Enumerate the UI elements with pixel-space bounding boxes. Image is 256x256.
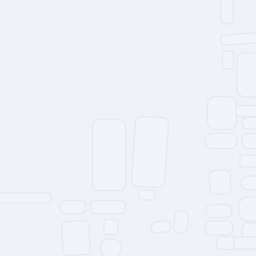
button[interactable]: Chip — [151, 221, 171, 232]
button[interactable]: Row — [242, 117, 256, 129]
button[interactable]: Field — [91, 200, 125, 213]
button[interactable]: Card — [62, 221, 89, 255]
button[interactable]: Badge — [101, 239, 121, 256]
button[interactable]: Pill — [242, 223, 256, 239]
button[interactable]: Row — [234, 237, 256, 249]
button[interactable]: Title bar — [0, 193, 51, 203]
button[interactable]: Pill — [206, 204, 232, 217]
button[interactable]: Pill — [216, 236, 237, 249]
button[interactable]: Tag — [60, 200, 86, 213]
button[interactable]: Pill — [241, 176, 256, 190]
button[interactable]: Banner — [221, 33, 256, 43]
button[interactable]: Tile — [239, 197, 256, 221]
button[interactable]: Chip — [174, 210, 187, 233]
button[interactable]: Pill — [205, 221, 232, 235]
button[interactable]: Row — [240, 155, 256, 167]
button[interactable]: Caption — [139, 190, 155, 200]
button[interactable]: Marker — [222, 51, 233, 69]
button[interactable]: Indicator — [221, 0, 233, 24]
